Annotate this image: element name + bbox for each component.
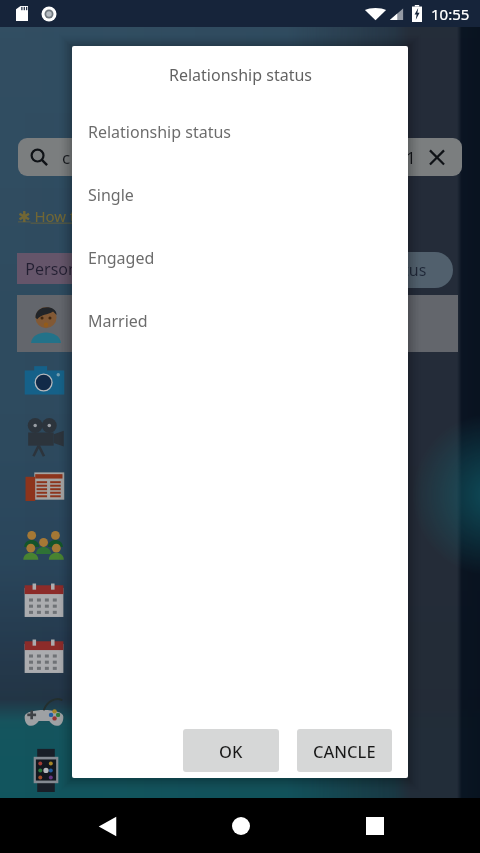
button[interactable]: c: [18, 138, 462, 176]
button[interactable]: Home: [218, 803, 264, 849]
button[interactable]: OK: [183, 729, 279, 772]
button[interactable]: Recents: [352, 803, 398, 849]
staticText: c: [62, 146, 71, 169]
button[interactable]: Married: [72, 289, 408, 352]
button[interactable]: Rel. status: [337, 252, 453, 288]
staticText: Engaged: [88, 247, 155, 269]
staticText: Personal info: [17, 258, 125, 280]
staticText: OK: [219, 740, 243, 762]
staticText: Married: [88, 310, 148, 332]
staticText: 10:55: [431, 4, 470, 24]
button[interactable]: Single: [72, 163, 408, 226]
staticText: Rel. status: [349, 259, 427, 281]
staticText: ✱ How to use this app: [18, 206, 174, 226]
staticText: Relationship status: [88, 121, 231, 143]
button[interactable]: CANCLE: [297, 729, 392, 772]
staticText: CANCLE: [313, 740, 376, 762]
button[interactable]: Relationship status: [72, 100, 408, 163]
button[interactable]: Back: [84, 803, 130, 849]
staticText: Relationship status: [169, 64, 312, 86]
staticText: 1: [406, 146, 416, 169]
staticText: Single: [88, 184, 134, 206]
button[interactable]: Engaged: [72, 226, 408, 289]
button[interactable]: Clear search: [426, 146, 448, 168]
button[interactable]: Personal info: [17, 253, 142, 284]
